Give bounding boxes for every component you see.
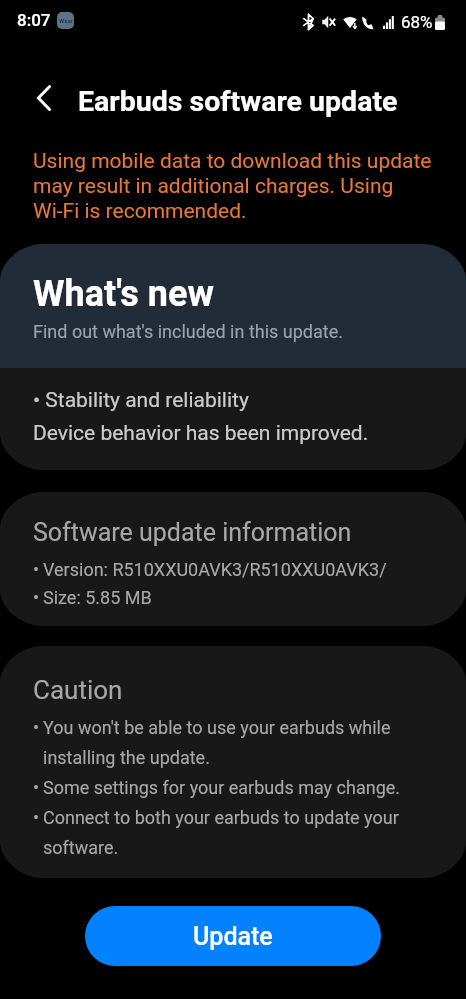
staticText: • xyxy=(33,800,40,830)
staticText: • Stability and reliability xyxy=(33,386,249,412)
staticText: • xyxy=(33,710,40,740)
staticText: Device behavior has been improved. xyxy=(33,419,369,445)
staticText: • xyxy=(33,770,40,800)
staticText: Using mobile data to download this updat… xyxy=(33,148,432,173)
staticText: 68% xyxy=(401,11,433,33)
staticText: Wear xyxy=(59,17,73,24)
staticText: You won't be able to use your earbuds wh… xyxy=(43,710,433,770)
staticText: Version: R510XXU0AVK3/R510XXU0AVK3/ xyxy=(43,554,387,582)
staticText: 8:07 xyxy=(17,9,51,31)
staticText: Some settings for your earbuds may chang… xyxy=(43,770,401,800)
staticText: Caution xyxy=(33,675,123,705)
staticText: Connect to both your earbuds to update y… xyxy=(43,800,433,860)
staticText: may result in additional charges. Using xyxy=(33,173,394,198)
button[interactable]: Back xyxy=(21,75,67,121)
button[interactable]: Update xyxy=(85,906,381,966)
staticText: What's new xyxy=(33,273,214,315)
staticText: Wi-Fi is recommended. xyxy=(33,198,247,223)
staticText: Software update information xyxy=(33,517,352,547)
staticText: Update xyxy=(193,921,273,951)
staticText: • xyxy=(33,554,40,582)
staticText: Find out what's included in this update. xyxy=(33,319,343,343)
staticText: Size: 5.85 MB xyxy=(43,582,152,610)
staticText: Earbuds software update xyxy=(78,84,398,118)
staticText: • xyxy=(33,582,40,610)
